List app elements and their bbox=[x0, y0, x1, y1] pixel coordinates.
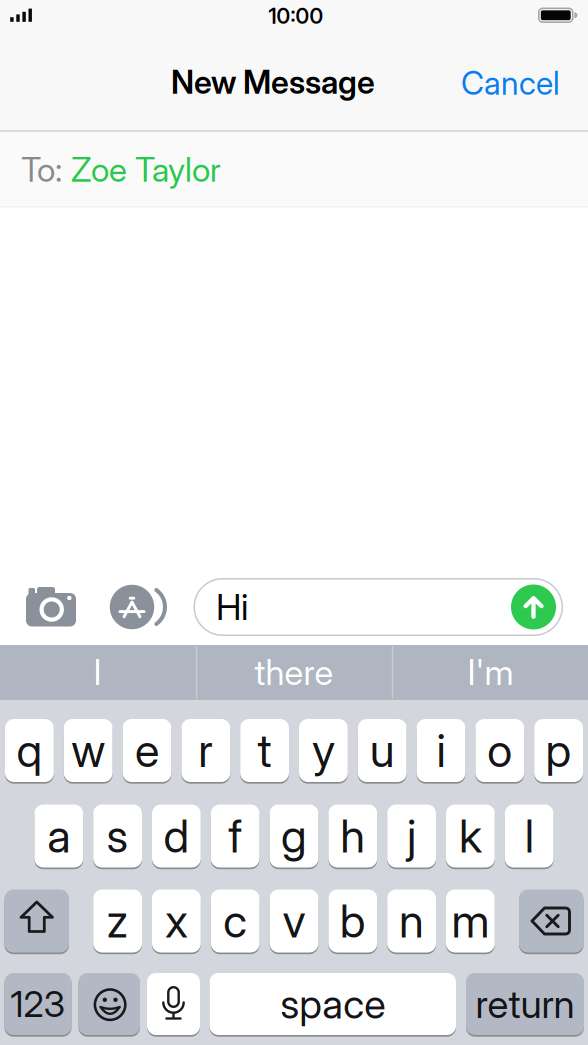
button[interactable]: Shift bbox=[4, 889, 69, 952]
staticText: g bbox=[281, 809, 307, 863]
staticText: u bbox=[370, 724, 395, 777]
staticText: Cancel bbox=[461, 64, 560, 102]
staticText: a bbox=[47, 809, 70, 863]
staticText: z bbox=[107, 894, 129, 948]
button[interactable]: s bbox=[93, 804, 142, 867]
button[interactable]: Dictate bbox=[147, 973, 200, 1035]
staticText: j bbox=[407, 809, 416, 863]
staticText: e bbox=[135, 724, 159, 777]
staticText: s bbox=[107, 809, 129, 863]
staticText: k bbox=[459, 809, 482, 863]
button[interactable]: v bbox=[270, 889, 318, 952]
button[interactable]: q bbox=[5, 719, 54, 782]
staticText: I'm bbox=[467, 652, 513, 693]
staticText: c bbox=[223, 894, 247, 948]
staticText: n bbox=[399, 894, 424, 948]
staticText: Hi bbox=[216, 586, 248, 628]
staticText: I bbox=[93, 652, 101, 693]
button[interactable]: Camera bbox=[22, 582, 80, 632]
button[interactable]: there bbox=[196, 645, 391, 700]
button[interactable]: z bbox=[93, 889, 142, 952]
button[interactable]: m bbox=[446, 889, 495, 952]
staticText: v bbox=[282, 894, 305, 948]
staticText: i bbox=[436, 724, 445, 777]
staticText: t bbox=[258, 724, 272, 777]
button[interactable]: k bbox=[446, 804, 495, 867]
button[interactable]: e bbox=[123, 719, 171, 782]
button[interactable]: u bbox=[358, 719, 407, 782]
staticText: f bbox=[228, 809, 242, 863]
button[interactable]: Delete bbox=[519, 889, 583, 952]
button[interactable]: I'm bbox=[393, 645, 588, 700]
staticText: there bbox=[254, 652, 333, 693]
button[interactable]: return bbox=[466, 973, 584, 1035]
button[interactable]: Cancel bbox=[410, 61, 560, 105]
staticText: return bbox=[475, 981, 574, 1027]
button[interactable]: c bbox=[211, 889, 260, 952]
staticText: q bbox=[16, 724, 42, 777]
staticText: 10:00 bbox=[268, 3, 323, 29]
button[interactable]: t bbox=[240, 719, 289, 782]
button[interactable]: n bbox=[387, 889, 436, 952]
staticText: w bbox=[71, 724, 105, 777]
button[interactable]: o bbox=[475, 719, 524, 782]
staticText: Zoe Taylor bbox=[71, 150, 221, 189]
button[interactable]: w bbox=[64, 719, 113, 782]
staticText: b bbox=[340, 894, 366, 948]
button[interactable]: space bbox=[209, 973, 456, 1035]
staticText: l bbox=[525, 809, 534, 863]
staticText: x bbox=[165, 894, 188, 948]
staticText: d bbox=[163, 809, 189, 863]
button[interactable]: y bbox=[299, 719, 348, 782]
staticText: h bbox=[340, 809, 365, 863]
staticText: y bbox=[312, 724, 335, 777]
button[interactable]: i bbox=[417, 719, 465, 782]
button[interactable]: g bbox=[270, 804, 318, 867]
button[interactable]: h bbox=[328, 804, 377, 867]
staticText: r bbox=[198, 724, 213, 777]
button[interactable]: a bbox=[34, 804, 83, 867]
button[interactable]: l bbox=[505, 804, 554, 867]
button[interactable]: r bbox=[181, 719, 230, 782]
button[interactable]: f bbox=[211, 804, 260, 867]
staticText: p bbox=[546, 724, 572, 777]
button[interactable]: x bbox=[152, 889, 201, 952]
button[interactable]: Emoji bbox=[78, 973, 140, 1035]
button[interactable]: Send bbox=[511, 584, 556, 629]
staticText: o bbox=[487, 724, 512, 777]
button[interactable]: I bbox=[0, 645, 195, 700]
button[interactable]: 123 bbox=[4, 973, 71, 1035]
staticText: 123 bbox=[10, 983, 65, 1025]
button[interactable]: j bbox=[387, 804, 436, 867]
button[interactable]: b bbox=[328, 889, 377, 952]
staticText: space bbox=[280, 980, 385, 1028]
button[interactable]: p bbox=[534, 719, 583, 782]
button[interactable]: Apps bbox=[107, 581, 165, 633]
staticText: To: bbox=[21, 150, 62, 189]
button[interactable]: d bbox=[152, 804, 201, 867]
staticText: m bbox=[451, 894, 489, 948]
staticText: New Message bbox=[171, 63, 375, 101]
